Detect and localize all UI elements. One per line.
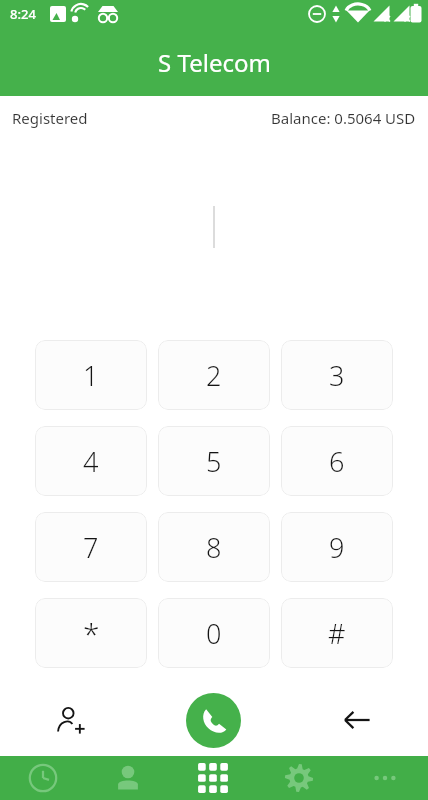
button[interactable]: 1 xyxy=(35,340,147,410)
staticText: * xyxy=(83,613,100,654)
button[interactable]: 6 xyxy=(281,426,393,496)
staticText: 0 xyxy=(206,615,222,652)
button[interactable]: * xyxy=(35,598,147,668)
staticText: 1 xyxy=(83,357,99,394)
button[interactable]: 5 xyxy=(158,426,270,496)
button[interactable]: Contacts xyxy=(85,756,170,800)
button[interactable]: 7 xyxy=(35,512,147,582)
staticText: 4 xyxy=(83,443,99,480)
staticText: 7 xyxy=(83,529,99,566)
button[interactable]: Add contact xyxy=(0,684,142,756)
button[interactable]: 2 xyxy=(158,340,270,410)
staticText: 2 xyxy=(206,357,222,394)
button[interactable]: Settings xyxy=(256,756,342,800)
button[interactable]: 0 xyxy=(158,598,270,668)
staticText: 9 xyxy=(329,529,345,566)
button[interactable]: 8 xyxy=(158,512,270,582)
staticText: Registered xyxy=(12,108,88,128)
staticText: 8 xyxy=(206,529,222,566)
button[interactable]: Recent calls xyxy=(0,756,85,800)
button[interactable]: 4 xyxy=(35,426,147,496)
button[interactable]: Delete xyxy=(285,684,428,756)
staticText: # xyxy=(328,615,346,652)
staticText: Balance: 0.5064 USD xyxy=(271,108,416,128)
staticText: 3 xyxy=(329,357,345,394)
button[interactable]: More options xyxy=(342,756,428,800)
button[interactable]: Call xyxy=(186,693,241,748)
button[interactable]: Dialpad xyxy=(170,756,256,800)
staticText: 6 xyxy=(329,443,345,480)
staticText: 8:24 xyxy=(10,5,36,23)
button[interactable]: 3 xyxy=(281,340,393,410)
button[interactable]: 9 xyxy=(281,512,393,582)
button[interactable]: # xyxy=(281,598,393,668)
staticText: 5 xyxy=(206,443,222,480)
staticText: S Telecom xyxy=(158,46,271,79)
